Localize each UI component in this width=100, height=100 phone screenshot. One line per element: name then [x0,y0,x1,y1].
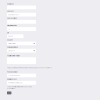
staticText: Company [7,3,14,5]
button[interactable]: Street address [7,13,36,17]
staticText: Things we will do with the info you prov… [7,86,32,88]
staticText: Address [7,10,14,12]
staticText: United States [8,43,16,44]
button[interactable]: Save [7,91,11,94]
button[interactable]: name@example.com [7,81,36,85]
staticText: Save [7,92,11,94]
staticText: Address line 2 [7,17,17,19]
staticText: Email address [7,78,17,80]
button[interactable]: Standard [7,49,36,53]
button[interactable]: 00000 [7,34,23,38]
staticText: City, State/Region [7,25,17,26]
staticText: +1 555 000 0000 [8,75,20,76]
staticText: Street address [8,14,19,16]
staticText: are outlined. [7,88,15,89]
button[interactable]: United States [7,41,36,45]
staticText: name@example.com [8,82,22,84]
staticText: Country [7,39,13,41]
staticText: Additional information [7,55,20,57]
staticText: Tell us anything else we need to know ab… [7,67,52,69]
staticText: Phone number [7,71,18,73]
staticText: 00000 [8,35,13,37]
staticText: City [8,28,10,30]
staticText: Standard [8,50,15,52]
button[interactable]: +1 555 000 0000 [7,74,36,77]
staticText: Zip [7,32,9,34]
staticText: Shipping method [7,46,18,48]
